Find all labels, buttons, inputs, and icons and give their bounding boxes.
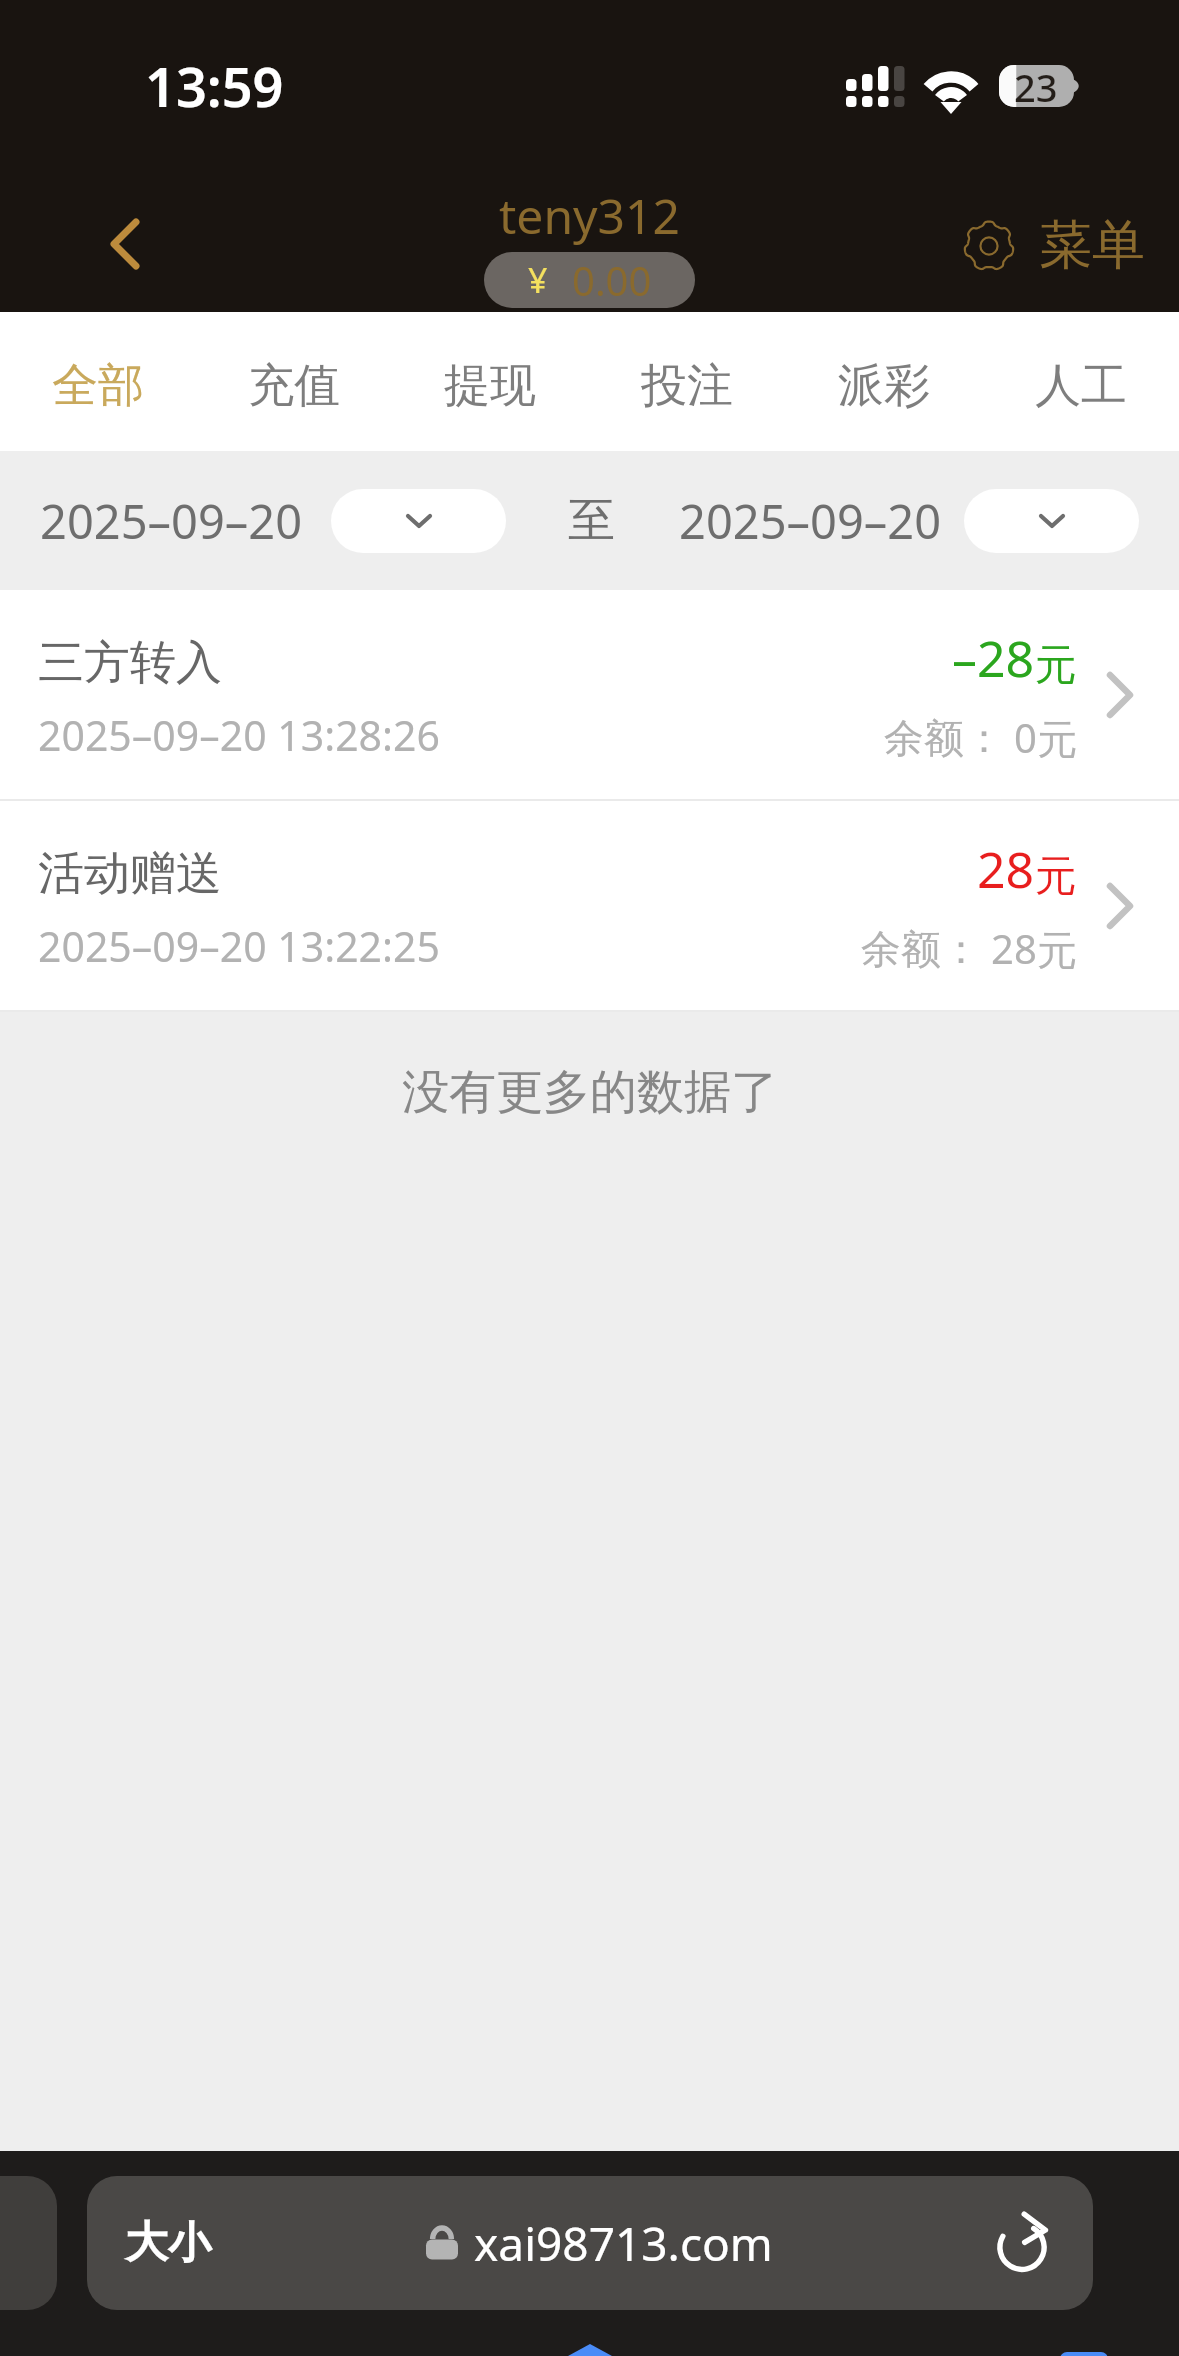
button[interactable]: 人工 bbox=[982, 312, 1179, 451]
button[interactable]: 三方转入 bbox=[0, 590, 1179, 799]
staticText: 大小 bbox=[125, 2216, 211, 2270]
staticText: teny312 bbox=[499, 183, 680, 248]
button[interactable]: Menu bbox=[955, 204, 1153, 287]
button[interactable]: ¥ bbox=[484, 252, 695, 308]
staticText: xai98713.com bbox=[474, 2212, 773, 2275]
staticText: 余额： bbox=[861, 924, 981, 974]
button[interactable]: 充值 bbox=[196, 312, 392, 451]
staticText: 余额： bbox=[884, 713, 1004, 763]
staticText: 投注 bbox=[641, 357, 733, 415]
button[interactable]: 大小 bbox=[87, 2176, 1093, 2310]
staticText: 2025–09–20 bbox=[679, 489, 942, 553]
staticText: 元 bbox=[1035, 639, 1077, 692]
staticText: 没有更多的数据了 bbox=[402, 1063, 778, 1122]
staticText: 13:59 bbox=[145, 49, 284, 123]
staticText: 2025–09–20 bbox=[40, 489, 303, 553]
button[interactable]: 活动赠送 bbox=[0, 801, 1179, 1010]
button[interactable]: 全部 bbox=[0, 312, 196, 451]
staticText: 派彩 bbox=[838, 357, 930, 415]
staticText: 28 bbox=[977, 835, 1035, 903]
button[interactable]: Select date bbox=[964, 489, 1139, 553]
staticText: ¥ bbox=[528, 257, 548, 303]
button[interactable]: Previous tab bbox=[0, 2176, 57, 2310]
staticText: 元 bbox=[1035, 850, 1077, 903]
button[interactable]: Reload bbox=[987, 2207, 1059, 2279]
staticText: 提现 bbox=[444, 357, 536, 415]
staticText: 23 bbox=[1014, 61, 1058, 113]
button[interactable]: Back bbox=[67, 186, 183, 302]
staticText: 2025–09–20 13:22:25 bbox=[38, 918, 440, 974]
button[interactable]: 投注 bbox=[588, 312, 785, 451]
staticText: –28 bbox=[952, 624, 1035, 692]
staticText: 菜单 bbox=[1039, 212, 1145, 279]
button[interactable]: 提现 bbox=[392, 312, 588, 451]
staticText: 充值 bbox=[248, 357, 340, 415]
staticText: 活动赠送 bbox=[38, 845, 222, 903]
button[interactable]: 派彩 bbox=[785, 312, 982, 451]
staticText: 0.00 bbox=[572, 253, 652, 307]
staticText: 至 bbox=[568, 491, 615, 550]
staticText: 2025–09–20 13:28:26 bbox=[38, 707, 440, 763]
staticText: 三方转入 bbox=[38, 634, 222, 692]
staticText: 人工 bbox=[1035, 357, 1127, 415]
staticText: 全部 bbox=[52, 357, 144, 415]
staticText: 0元 bbox=[1014, 710, 1077, 765]
button[interactable]: Select date bbox=[331, 489, 506, 553]
staticText: 28元 bbox=[991, 921, 1077, 976]
